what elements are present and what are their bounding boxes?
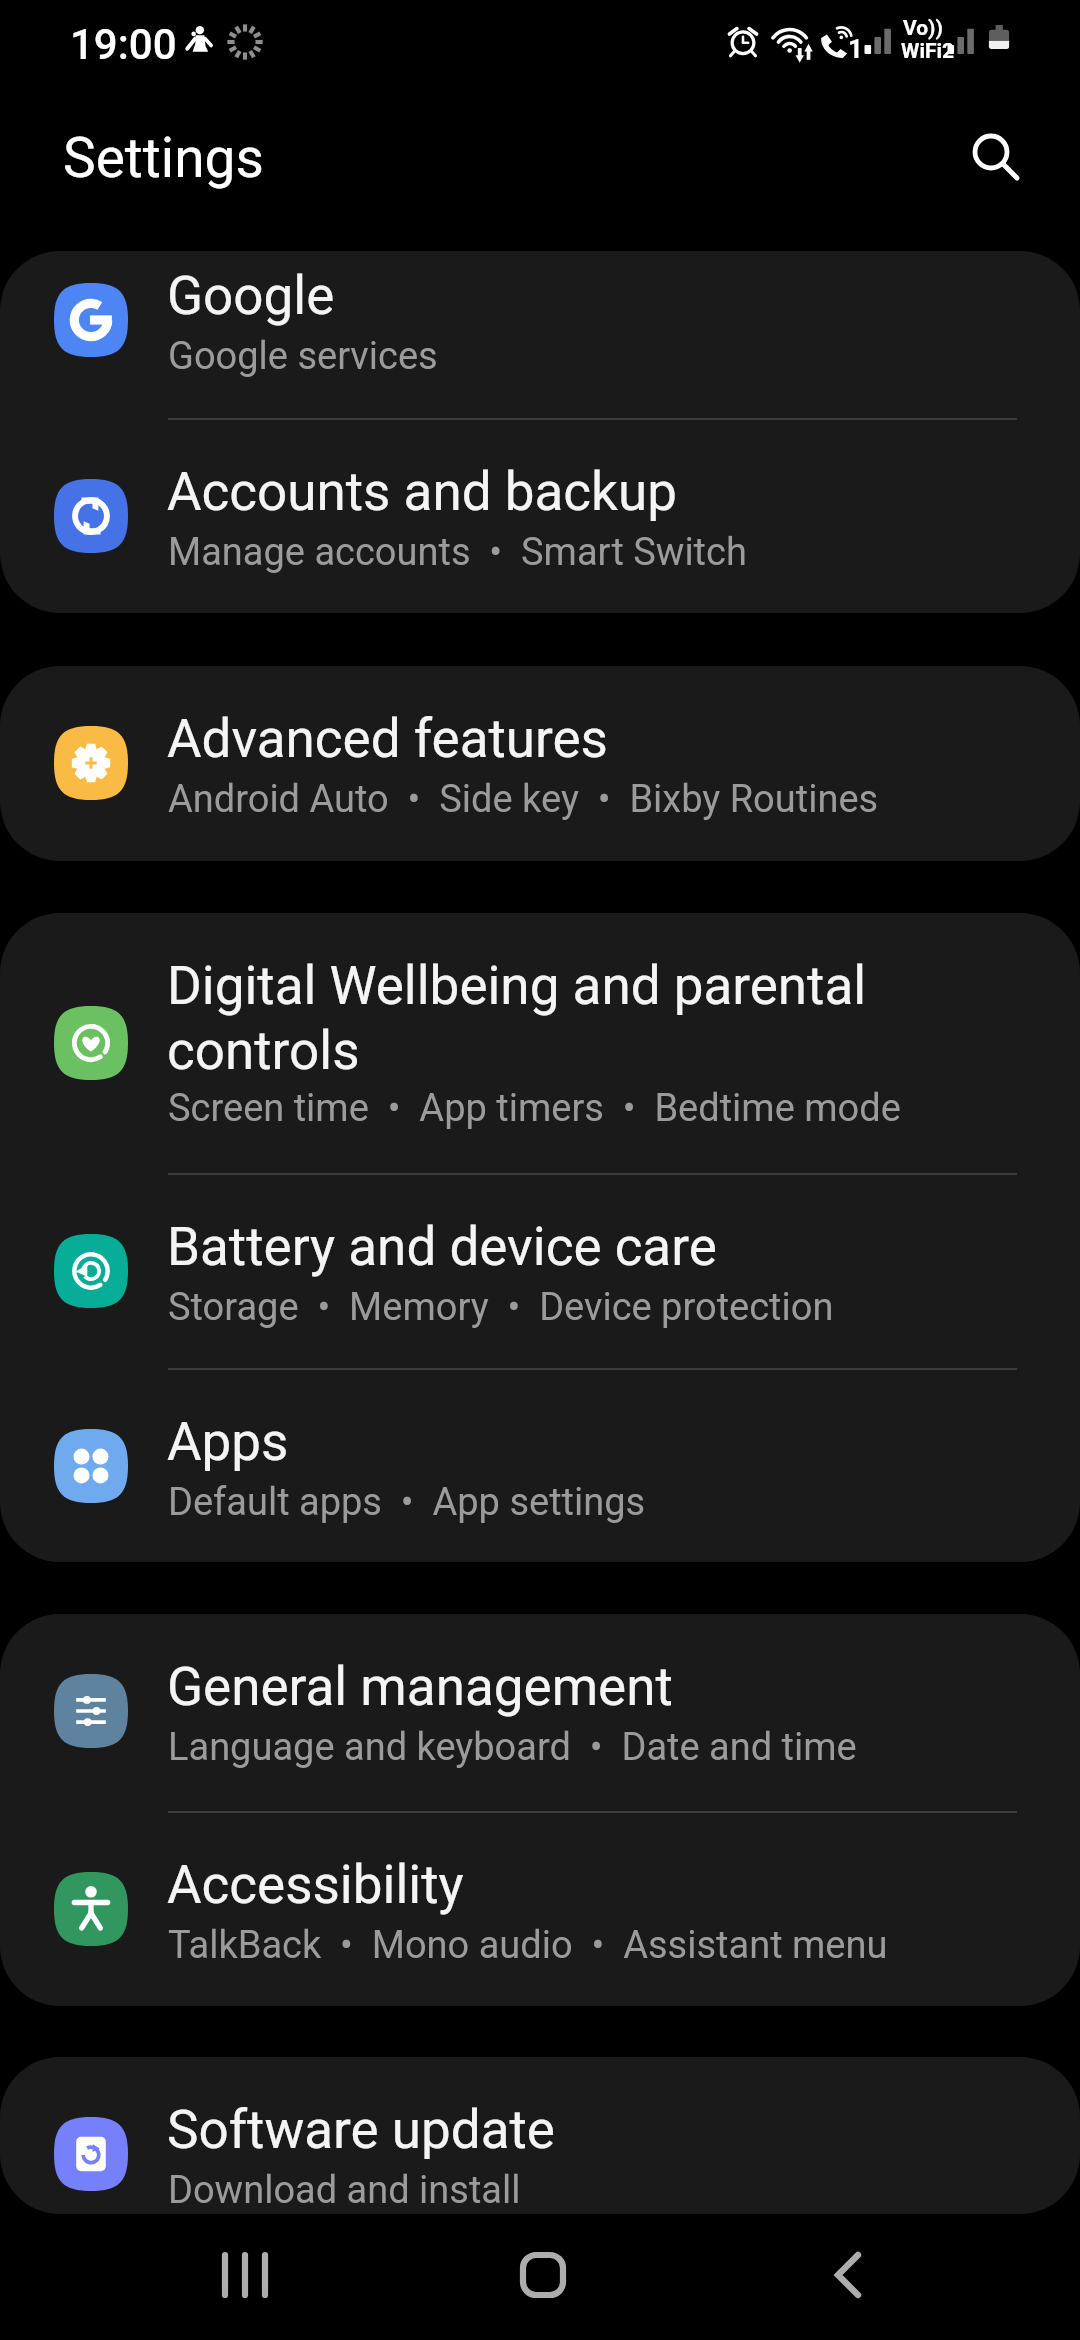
staticText: Accounts and backup [167,461,1037,523]
staticText: 19:00 [70,20,177,69]
button[interactable]: Software update [0,2057,1080,2214]
button[interactable]: Battery and device care [0,1174,1080,1369]
staticText: TalkBack • Mono audio • Assistant menu [168,1923,888,1968]
staticText: Settings [63,126,264,190]
staticText: Accessibility [167,1854,1037,1916]
staticText: Software update [167,2099,1037,2161]
staticText: Digital Wellbeing and parental controls [167,955,877,1082]
staticText: WiFi2 [901,39,955,64]
button[interactable]: Recent apps [155,2212,335,2338]
button[interactable]: Google [0,251,1080,418]
button[interactable]: Accessibility [0,1812,1080,2006]
staticText: Google [167,265,1037,327]
button[interactable]: Apps [0,1369,1080,1562]
staticText: Battery and device care [167,1216,1037,1278]
staticText: General management [167,1656,1037,1718]
staticText: Default apps • App settings [168,1480,646,1525]
staticText: Advanced features [167,708,1037,770]
staticText: Google services [168,334,438,379]
staticText: Manage accounts • Smart Switch [168,530,747,575]
staticText: Language and keyboard • Date and time [168,1725,857,1770]
staticText: Apps [167,1411,1037,1473]
button[interactable]: Digital Wellbeing and parental controls [0,913,1080,1173]
staticText: Android Auto • Side key • Bixby Routines [168,777,879,822]
staticText: Vo)) [903,16,943,41]
staticText: Download and install [168,2168,521,2213]
staticText: 1 [848,34,863,64]
button[interactable]: Back [759,2212,939,2338]
button[interactable]: Advanced features [0,666,1080,861]
button[interactable]: General management [0,1614,1080,1809]
button[interactable]: Search [935,92,1055,212]
staticText: Storage • Memory • Device protection [168,1285,834,1330]
button[interactable]: Home [453,2212,633,2338]
staticText: Screen time • App timers • Bedtime mode [168,1086,901,1131]
button[interactable]: Accounts and backup [0,419,1080,613]
